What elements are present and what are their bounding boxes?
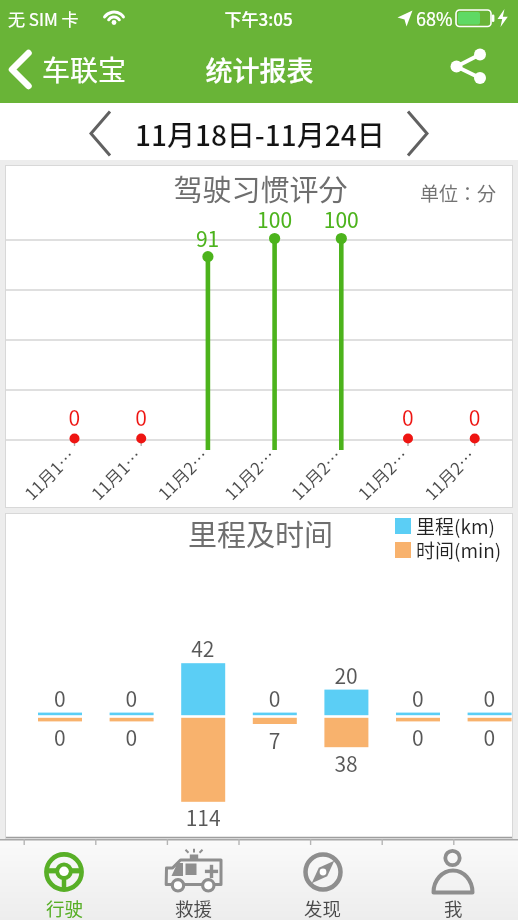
button[interactable] (0, 36, 150, 103)
button[interactable] (129, 841, 258, 920)
button[interactable] (454, 36, 518, 103)
button[interactable] (388, 841, 518, 920)
button[interactable] (78, 103, 122, 160)
button[interactable] (258, 841, 388, 920)
button[interactable] (0, 841, 129, 920)
button[interactable] (396, 103, 440, 160)
